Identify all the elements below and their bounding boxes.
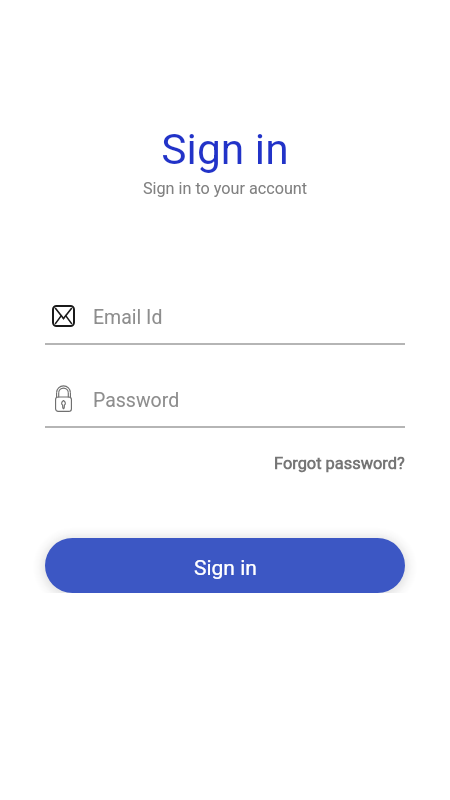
staticText: Sign in	[194, 556, 257, 581]
staticText: Email Id	[93, 306, 163, 329]
staticText: Sign in to your account	[0, 179, 450, 198]
other: Email	[52, 305, 75, 327]
button[interactable]: Email	[45, 300, 405, 345]
button[interactable]: Sign in	[45, 538, 405, 593]
button[interactable]: Forgot password?	[272, 448, 407, 479]
staticText: Forgot password?	[274, 454, 405, 473]
staticText: Password	[93, 389, 180, 412]
staticText: Sign in	[0, 125, 450, 175]
other: Password	[55, 385, 72, 412]
button[interactable]: Password	[45, 383, 405, 428]
